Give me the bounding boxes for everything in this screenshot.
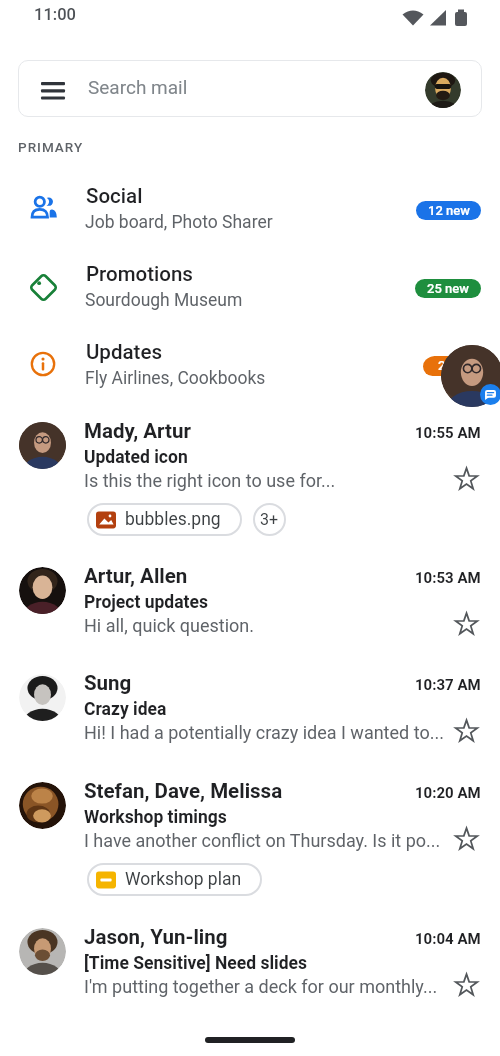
staticText: 3+ [260, 510, 279, 529]
button[interactable]: Jason, Yun-ling [0, 915, 500, 1025]
staticText: Hi! I had a potentially crazy idea I wan… [84, 722, 444, 743]
button[interactable]: Workshop plan [87, 863, 262, 896]
staticText: bubbles.png [125, 509, 221, 530]
staticText: 10:37 AM [415, 676, 481, 694]
button[interactable] [454, 826, 479, 851]
staticText: PRIMARY [18, 139, 84, 155]
staticText: Sung [84, 671, 132, 695]
staticText: Crazy idea [84, 699, 167, 720]
staticText: Updates [86, 340, 163, 364]
button[interactable]: Stefan, Dave, Melissa [0, 769, 500, 915]
staticText: 25 new [427, 281, 469, 296]
staticText: Artur, Allen [84, 564, 188, 588]
staticText: Social [86, 184, 143, 208]
staticText: Workshop plan [125, 869, 242, 890]
staticText: I have another conflict on Thursday. Is … [84, 830, 441, 851]
staticText: Search mail [88, 76, 188, 98]
staticText: 11:00 [34, 5, 76, 24]
staticText: I'm putting together a deck for our mont… [84, 976, 438, 997]
button[interactable] [454, 466, 479, 491]
staticText: Jason, Yun-ling [84, 925, 228, 949]
staticText: 10:04 AM [415, 930, 481, 948]
button[interactable] [425, 72, 461, 108]
staticText: 2 new [435, 359, 470, 374]
staticText: Updated icon [84, 447, 188, 468]
staticText: 2 [438, 358, 446, 373]
staticText: [Time Sensitive] Need slides [84, 953, 308, 974]
button[interactable] [454, 972, 479, 997]
button[interactable]: 3+ [253, 503, 286, 536]
staticText: Sourdough Museum [85, 290, 243, 311]
button[interactable] [454, 718, 479, 743]
button[interactable]: Sung [0, 661, 500, 769]
staticText: Hi all, quick question. [84, 615, 254, 636]
staticText: Fly Airlines, Cookbooks [85, 368, 266, 389]
staticText: Is this the right icon to use for... [84, 470, 336, 491]
button[interactable]: Mady, Artur [0, 409, 500, 554]
staticText: Promotions [86, 262, 193, 286]
staticText: Stefan, Dave, Melissa [84, 779, 283, 803]
button[interactable]: Search mail [18, 60, 482, 117]
button[interactable] [454, 611, 479, 636]
button[interactable]: bubbles.png [87, 503, 242, 536]
button[interactable]: Social [0, 174, 500, 252]
button[interactable] [441, 345, 500, 407]
staticText: 10:55 AM [415, 424, 481, 442]
staticText: 10:20 AM [415, 784, 481, 802]
staticText: 12 new [428, 203, 470, 218]
button[interactable]: Promotions [0, 252, 500, 330]
button[interactable]: Updates [0, 330, 500, 408]
staticText: Job board, Photo Sharer [85, 212, 273, 233]
staticText: 10:53 AM [415, 569, 481, 587]
staticText: Project updates [84, 592, 208, 613]
staticText: Mady, Artur [84, 419, 191, 443]
button[interactable]: Artur, Allen [0, 554, 500, 661]
staticText: Workshop timings [84, 807, 227, 828]
